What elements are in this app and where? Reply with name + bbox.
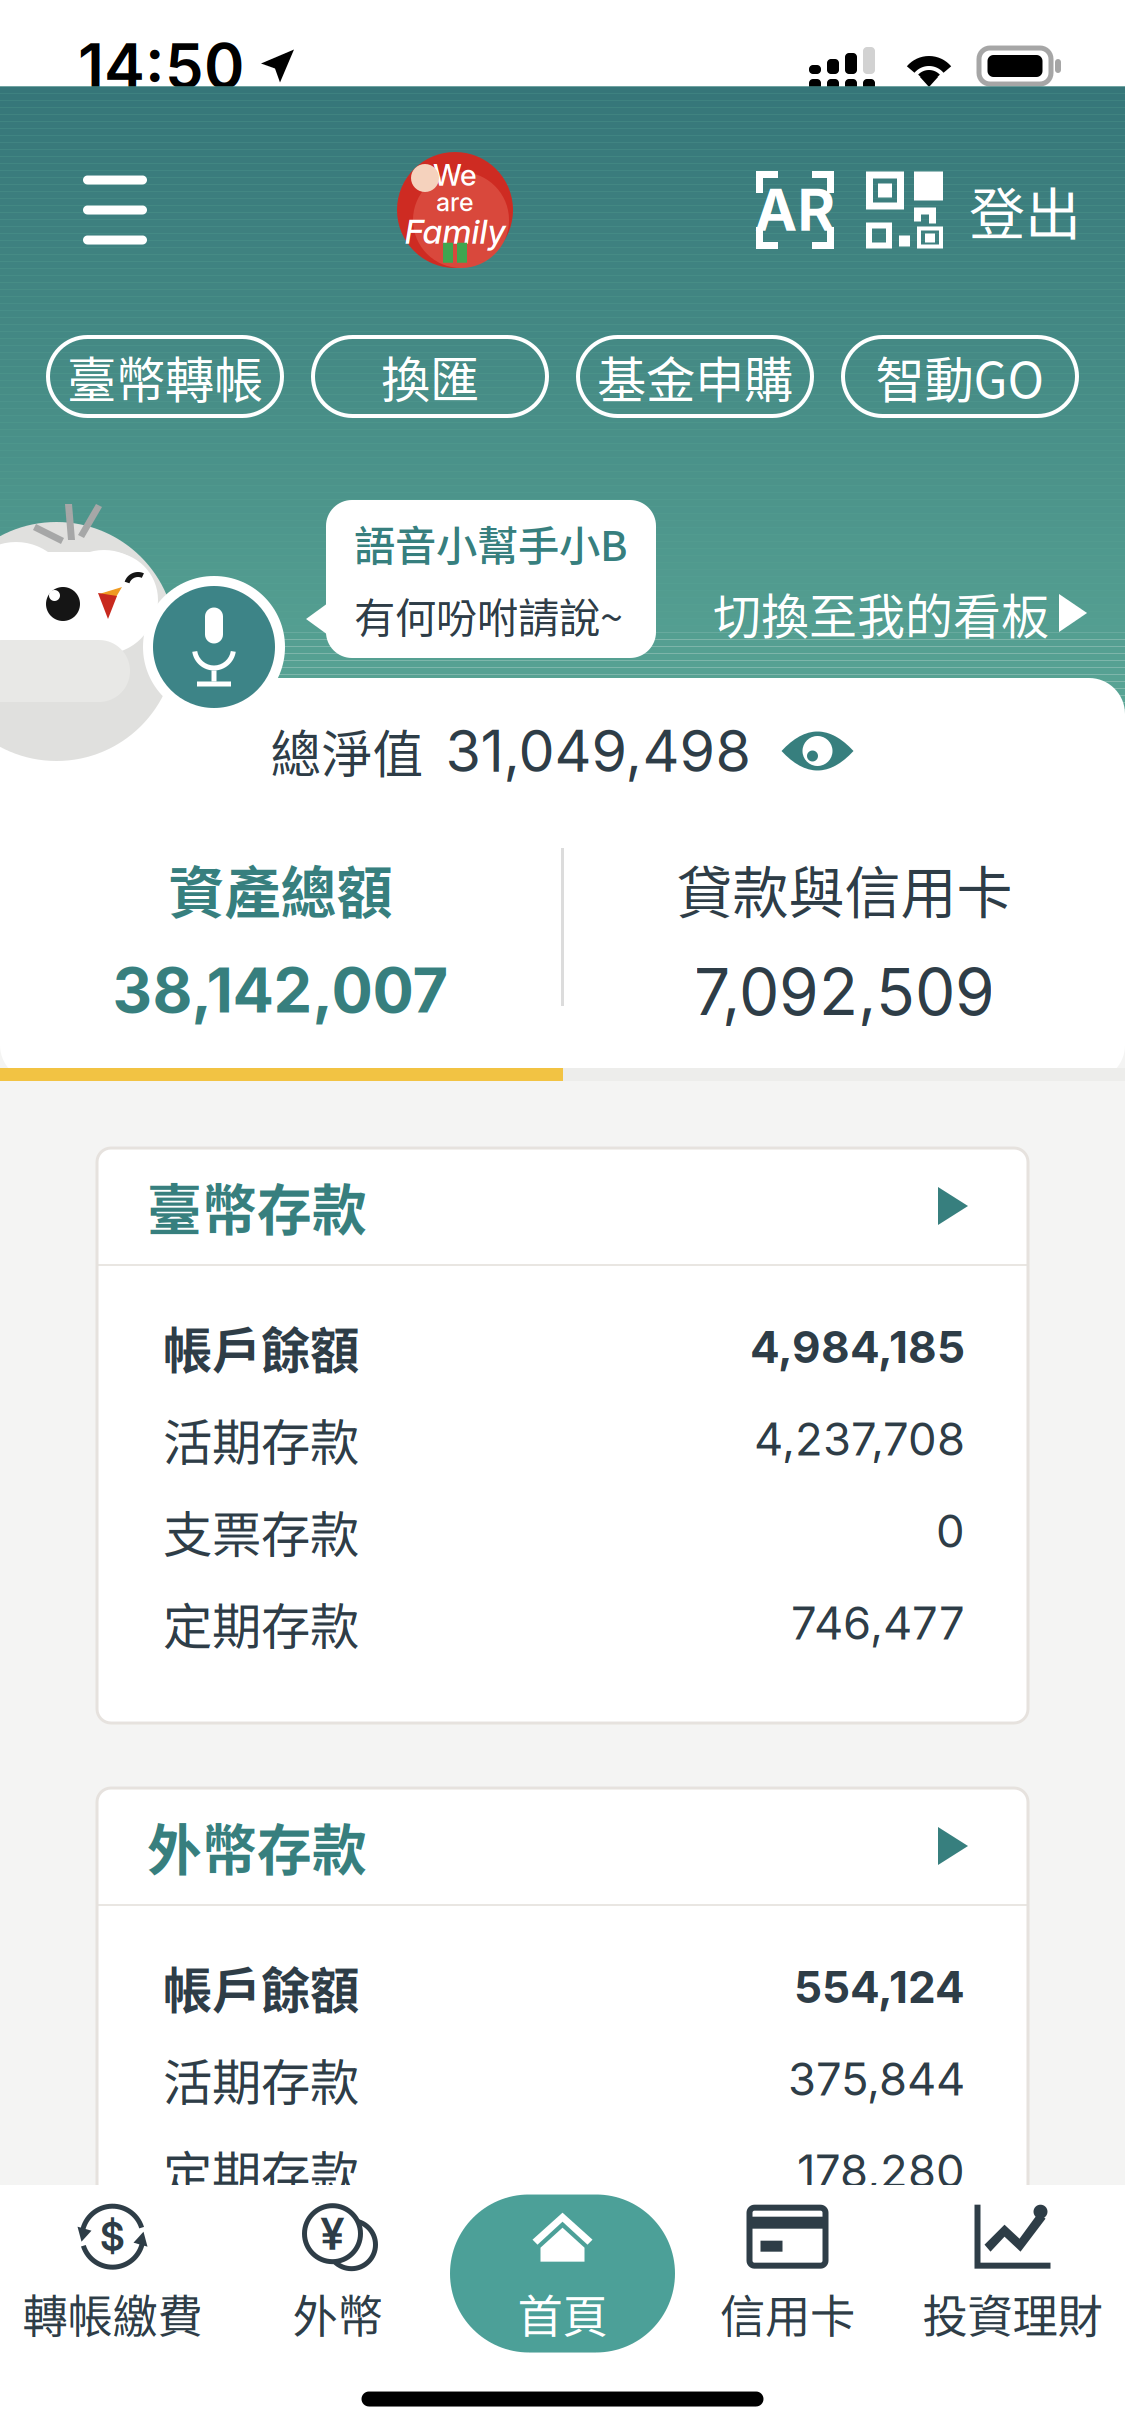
button[interactable]: 選單	[76, 172, 154, 247]
staticText: 換匯	[381, 341, 479, 412]
staticText: 語音小幫手小B	[354, 513, 628, 573]
staticText: Family	[404, 211, 505, 252]
staticText: 貸款與信用卡	[676, 848, 1012, 929]
staticText: 746,477	[791, 1596, 965, 1650]
staticText: 信用卡	[720, 2281, 855, 2346]
staticText: 基金申購	[597, 341, 793, 412]
button[interactable]: 臺幣轉帳	[48, 337, 282, 416]
staticText: 178,280	[797, 2144, 965, 2198]
button[interactable]: 換匯	[313, 337, 547, 416]
button[interactable]: 貸款與信用卡	[564, 848, 1125, 1030]
button[interactable]: 資產總額	[0, 848, 561, 1027]
staticText: $	[100, 2213, 125, 2260]
staticText: 4,237,708	[754, 1412, 965, 1466]
staticText: ¥	[320, 2207, 345, 2260]
staticText: 4,984,185	[750, 1320, 965, 1374]
button[interactable]: 顯示或隱藏金額	[780, 728, 854, 774]
button[interactable]: 登出	[969, 169, 1081, 251]
staticText: 切換至我的看板	[713, 578, 1049, 648]
button[interactable]: 首頁	[450, 2194, 675, 2352]
button[interactable]: 切換至我的看板	[713, 578, 1087, 648]
staticText: 投資理財	[922, 2281, 1102, 2346]
staticText: 帳戶餘額	[163, 1951, 359, 2023]
staticText: 0	[936, 1504, 965, 1558]
staticText: We	[433, 157, 477, 193]
staticText: 定期存款	[163, 1587, 359, 1659]
staticText: 有何吩咐請說~	[354, 585, 623, 645]
staticText: 7,092,509	[694, 953, 995, 1030]
staticText: 帳戶餘額	[163, 1311, 359, 1383]
staticText: 38,142,007	[112, 953, 448, 1027]
staticText: 登出	[969, 169, 1081, 251]
staticText: 臺幣轉帳	[67, 341, 263, 412]
button[interactable]: AR	[756, 171, 834, 249]
button[interactable]: $	[0, 2194, 225, 2352]
staticText: 外幣	[292, 2281, 382, 2346]
staticText: 31,049,498	[445, 716, 750, 786]
staticText: 臺幣存款	[147, 1166, 367, 1246]
button[interactable]: 臺幣存款	[97, 1148, 1028, 1264]
button[interactable]: 投資理財	[900, 2194, 1125, 2352]
button[interactable]: 掃描 QR Code	[866, 171, 943, 248]
button[interactable]: 基金申購	[578, 337, 812, 416]
staticText: 活期存款	[163, 1403, 359, 1475]
button[interactable]: 外幣存款	[97, 1788, 1028, 1904]
staticText: 總淨值	[270, 714, 423, 788]
staticText: 轉帳繳費	[22, 2281, 202, 2346]
staticText: 375,844	[788, 2052, 965, 2106]
button[interactable]: 信用卡	[675, 2194, 900, 2352]
staticText: 資產總額	[168, 848, 392, 929]
staticText: 智動GO	[875, 341, 1044, 412]
staticText: are	[436, 187, 474, 217]
staticText: 外幣存款	[147, 1806, 367, 1886]
button[interactable]: ¥	[225, 2194, 450, 2352]
staticText: 定期存款	[163, 2135, 359, 2207]
button[interactable]: 語音小幫手	[143, 576, 285, 718]
staticText: 活期存款	[163, 2043, 359, 2115]
staticText: 首頁	[517, 2281, 607, 2346]
staticText: 14:50	[78, 29, 244, 103]
button[interactable]: 智動GO	[843, 337, 1077, 416]
staticText: 支票存款	[163, 1495, 359, 1567]
staticText: AR	[754, 175, 835, 245]
staticText: 554,124	[794, 1960, 965, 2014]
